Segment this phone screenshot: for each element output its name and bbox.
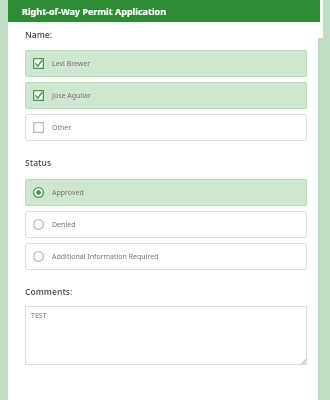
button[interactable]: Approved bbox=[25, 179, 307, 206]
staticText: Status bbox=[25, 157, 52, 169]
button[interactable]: Jose Aguilar bbox=[25, 82, 307, 109]
staticText: TEST bbox=[31, 311, 47, 321]
button[interactable]: Denied bbox=[25, 211, 307, 238]
button[interactable]: Additional Information Required bbox=[25, 243, 307, 270]
staticText: Jose Aguilar bbox=[52, 91, 91, 101]
staticText: Approved bbox=[52, 188, 84, 198]
staticText: Name: bbox=[25, 29, 53, 41]
staticText: Comments: bbox=[25, 286, 73, 298]
staticText: Right-of-Way Permit Application bbox=[22, 5, 167, 17]
staticText: Additional Information Required bbox=[52, 252, 159, 262]
staticText: Denied bbox=[52, 220, 76, 230]
button[interactable]: TEST bbox=[25, 306, 307, 365]
staticText: Other bbox=[52, 123, 72, 133]
staticText: Levi Brewer bbox=[52, 59, 91, 69]
button[interactable]: Levi Brewer bbox=[25, 50, 307, 77]
button[interactable]: Other bbox=[25, 114, 307, 141]
